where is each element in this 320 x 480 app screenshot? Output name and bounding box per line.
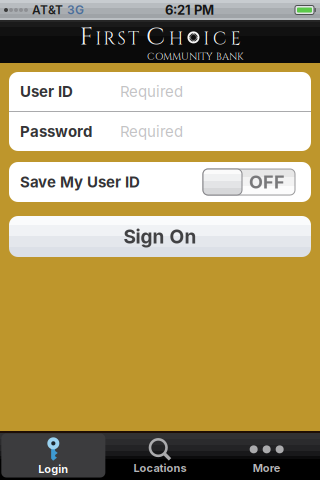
staticText: R: [103, 27, 115, 51]
staticText: OFF: [249, 171, 285, 193]
staticText: Required: [120, 122, 183, 140]
staticText: C: [213, 27, 227, 51]
button[interactable]: Login: [0, 431, 107, 480]
staticText: Sign On: [123, 225, 196, 248]
staticText: E: [231, 27, 241, 51]
button[interactable]: More: [213, 431, 320, 480]
staticText: I: [203, 27, 209, 51]
button[interactable]: Locations: [107, 431, 213, 480]
staticText: AT&T: [32, 3, 63, 17]
staticText: More: [253, 461, 281, 475]
staticText: 3G: [67, 3, 84, 17]
staticText: Login: [38, 462, 68, 476]
staticText: Required: [120, 82, 183, 100]
staticText: F: [79, 20, 93, 54]
staticText: T: [128, 27, 139, 51]
staticText: Locations: [133, 461, 186, 475]
button[interactable]: Sign On: [9, 216, 311, 257]
staticText: 6:21 PM: [165, 2, 214, 18]
button[interactable]: User ID: [9, 72, 311, 111]
staticText: Password: [20, 122, 92, 140]
button[interactable]: Save My User ID: [9, 162, 311, 202]
staticText: Save My User ID: [20, 173, 140, 191]
staticText: User ID: [20, 82, 73, 100]
staticText: H: [169, 27, 184, 51]
staticText: I: [95, 27, 101, 51]
button[interactable]: Password: [9, 112, 311, 151]
staticText: COMMUNITY BANK: [147, 50, 244, 63]
staticText: C: [146, 20, 165, 54]
staticText: S: [117, 27, 126, 51]
